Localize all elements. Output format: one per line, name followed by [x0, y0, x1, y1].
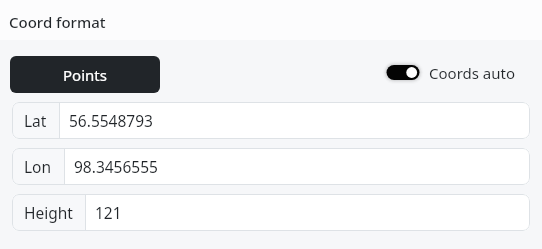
staticText: 56.5548793 — [69, 110, 153, 131]
staticText: Lon — [24, 156, 52, 177]
button[interactable]: Lat — [12, 102, 530, 139]
staticText: Lat — [24, 110, 47, 131]
staticText: Points — [63, 65, 107, 85]
staticText: 98.3456555 — [74, 156, 158, 177]
staticText: Coords auto — [429, 63, 516, 83]
button[interactable]: Coords auto toggle — [383, 62, 516, 83]
button[interactable]: Lon — [12, 148, 530, 185]
staticText: Height — [24, 202, 73, 223]
staticText: Coord format — [9, 12, 106, 32]
button[interactable]: Points — [10, 56, 160, 93]
button[interactable]: Height — [12, 194, 530, 231]
staticText: 121 — [95, 202, 122, 223]
